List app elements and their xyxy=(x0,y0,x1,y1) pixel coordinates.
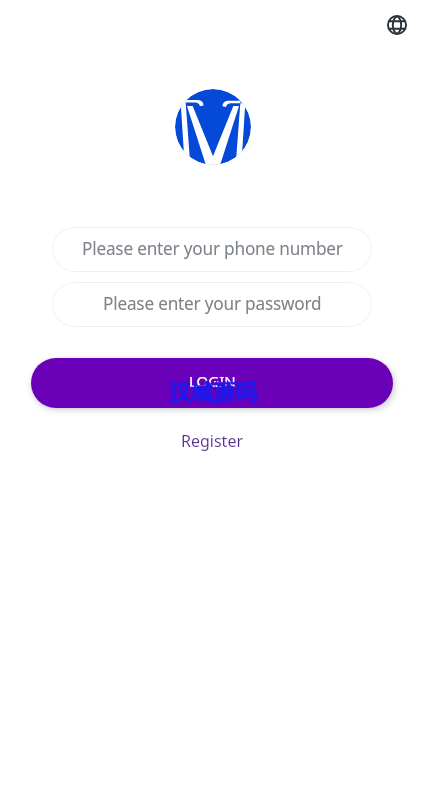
button[interactable]: Please enter your phone number xyxy=(52,227,372,272)
staticText: 汉城源码 xyxy=(169,379,257,407)
button[interactable]: LOGIN xyxy=(31,358,393,408)
button[interactable]: Please enter your password xyxy=(52,282,372,327)
staticText: 汉城源码 xyxy=(169,379,257,407)
button[interactable]: Register xyxy=(173,427,252,455)
staticText: Please enter your phone number xyxy=(82,237,343,260)
staticText: Please enter your password xyxy=(103,292,322,315)
staticText: Register xyxy=(181,430,244,452)
button[interactable]: Language xyxy=(381,9,413,41)
staticText: LOGIN xyxy=(189,371,236,391)
